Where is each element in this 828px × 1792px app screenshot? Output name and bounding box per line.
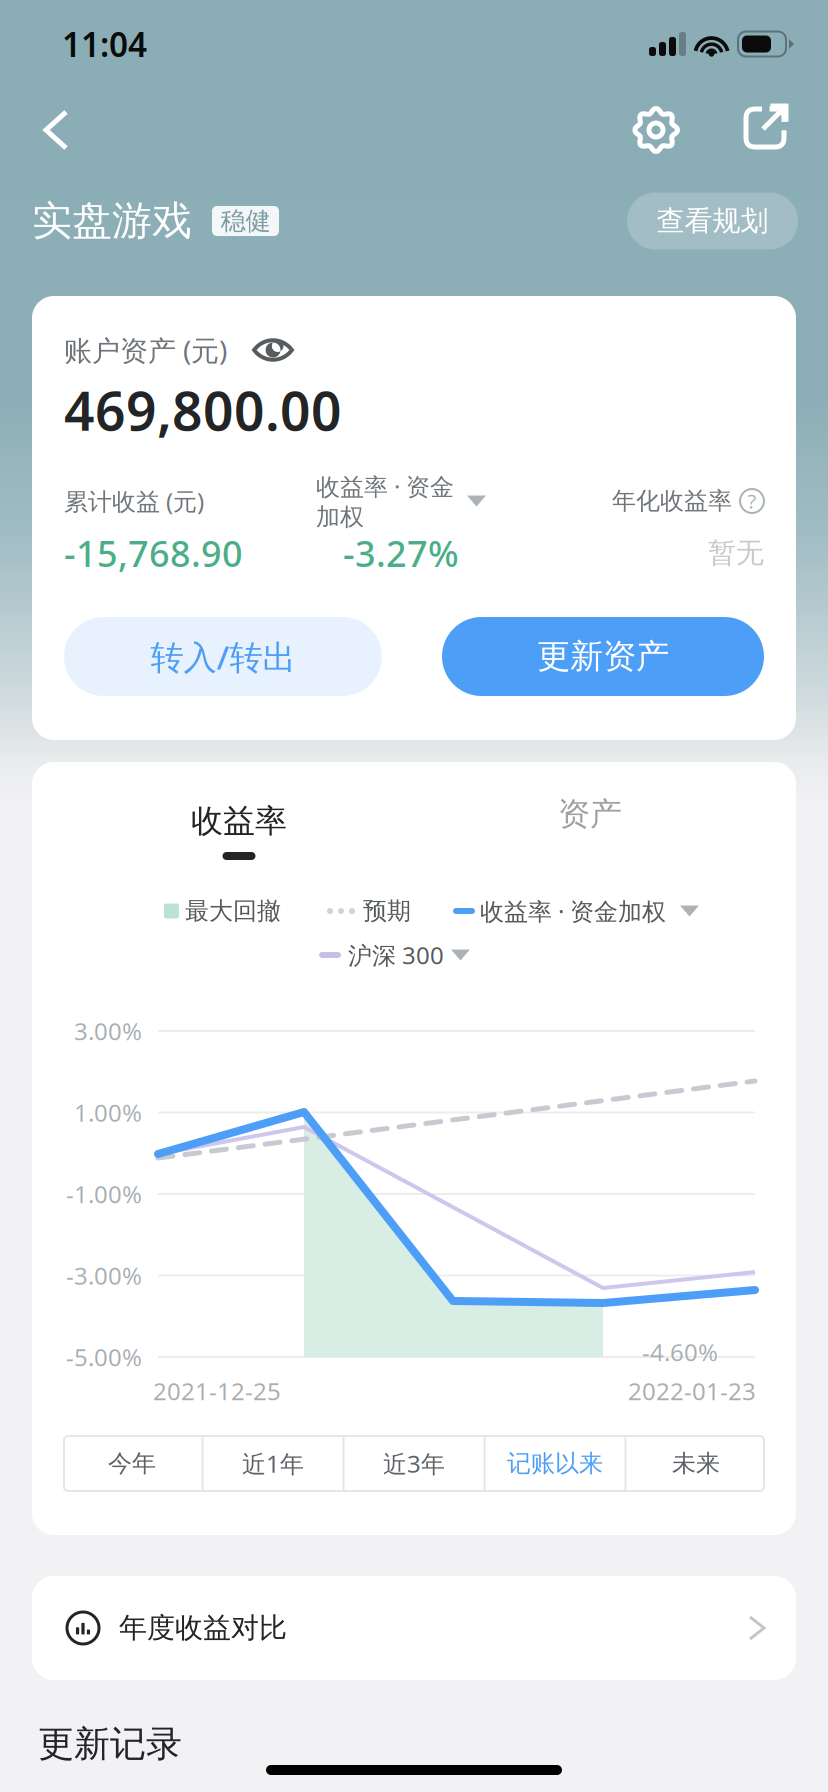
button[interactable]: 收益率 [119,797,359,867]
button[interactable]: 更新资产 [442,617,764,696]
button[interactable]: 资产 [470,797,710,867]
button[interactable]: 记账以来 [485,1436,624,1491]
staticText: -3.00% [66,1260,142,1291]
staticText: 2022-01-23 [628,1375,756,1407]
staticText: -1.00% [66,1178,142,1210]
button[interactable]: Share [746,92,822,168]
staticText: 今年 [108,1449,156,1478]
staticText: 暂无 [708,536,764,570]
staticText: -5.00% [66,1341,142,1373]
staticText: 查看规划 [656,204,768,238]
staticText: 更新资产 [537,636,669,677]
staticText: 11:04 [62,22,147,66]
button[interactable]: 今年 [62,1436,201,1491]
button[interactable]: 转入/转出 [64,617,382,696]
staticText: 1.00% [74,1097,142,1128]
staticText: -3.27% [343,529,459,577]
button[interactable]: 年度收益对比 [32,1576,796,1680]
button[interactable]: Settings [618,92,694,168]
staticText: 未来 [672,1449,720,1478]
button[interactable]: Change return metric [673,894,706,927]
staticText: 469,800.00 [64,375,342,445]
button[interactable]: Change benchmark [444,938,477,971]
staticText: 2021-12-25 [153,1375,281,1407]
staticText: 年度收益对比 [119,1611,287,1645]
button[interactable]: 近1年 [203,1436,342,1491]
staticText: 账户资产 (元) [64,331,227,369]
staticText: 资产 [558,794,622,834]
staticText: 实盘游戏 [32,196,192,245]
staticText: 记账以来 [507,1449,603,1478]
staticText: -15,768.90 [64,529,243,577]
staticText: -4.60% [642,1336,718,1368]
staticText: 年化收益率 [612,486,732,516]
staticText: 最大回撤 [185,896,281,926]
button[interactable]: Back [0,90,92,170]
staticText: 收益率 · 资金加权 [480,895,666,927]
button[interactable]: 查看规划 [627,192,798,249]
staticText: 转入/转出 [150,634,295,679]
button[interactable]: 未来 [626,1436,765,1491]
staticText: 稳健 [220,205,270,236]
staticText: 更新记录 [38,1722,182,1766]
staticText: 收益率 [191,801,287,841]
staticText: ? [747,488,756,514]
staticText: 累计收益 (元) [64,485,204,517]
button[interactable]: About annualised return [740,489,764,513]
staticText: 3.00% [74,1015,142,1047]
staticText: 收益率 · 资金加权 [316,470,454,532]
staticText: 沪深 300 [348,939,444,971]
button[interactable]: Toggle balance visibility [251,335,295,365]
staticText: 预期 [363,896,411,926]
staticText: 近3年 [383,1448,445,1479]
staticText: 近1年 [242,1448,304,1479]
button[interactable]: 近3年 [344,1436,483,1491]
